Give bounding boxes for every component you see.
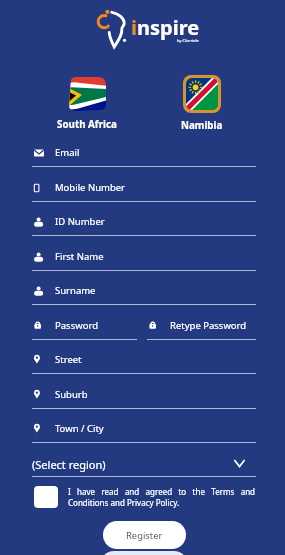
- button[interactable]: (Select region): [32, 452, 256, 477]
- staticText: by Clientele: [177, 38, 199, 43]
- staticText: Namibia: [181, 119, 223, 132]
- staticText: Email: [55, 146, 80, 159]
- button[interactable]: Email: [32, 139, 256, 167]
- staticText: i: [131, 14, 137, 41]
- button[interactable]: Street: [32, 346, 256, 374]
- staticText: Surname: [55, 284, 96, 297]
- staticText: Password: [55, 319, 98, 332]
- staticText: ID Number: [55, 215, 105, 228]
- button[interactable]: Mobile Number: [32, 174, 256, 202]
- staticText: Retype Password: [170, 319, 247, 332]
- button[interactable]: Accept terms and conditions: [34, 486, 58, 508]
- button[interactable]: Register: [103, 521, 186, 549]
- staticText: Register: [126, 529, 163, 542]
- staticText: nspire: [137, 14, 200, 41]
- staticText: Suburb: [55, 388, 88, 401]
- staticText: South Africa: [57, 118, 117, 131]
- button[interactable]: Login: [100, 551, 188, 555]
- button[interactable]: Surname: [32, 277, 256, 305]
- staticText: Mobile Number: [55, 181, 126, 194]
- button[interactable]: Town / City: [32, 415, 256, 443]
- staticText: (Select region): [32, 457, 106, 472]
- button[interactable]: Suburb: [32, 381, 256, 409]
- button[interactable]: South Africa: [47, 77, 127, 131]
- button[interactable]: ID Number: [32, 208, 256, 236]
- button[interactable]: Retype Password: [147, 312, 256, 340]
- staticText: Street: [55, 353, 82, 366]
- button[interactable]: Password: [32, 312, 137, 340]
- button[interactable]: First Name: [32, 243, 256, 271]
- staticText: Town / City: [55, 422, 104, 435]
- staticText: I have read and agreed to the Terms and …: [68, 486, 255, 508]
- button[interactable]: Namibia: [162, 75, 242, 132]
- staticText: First Name: [55, 250, 104, 263]
